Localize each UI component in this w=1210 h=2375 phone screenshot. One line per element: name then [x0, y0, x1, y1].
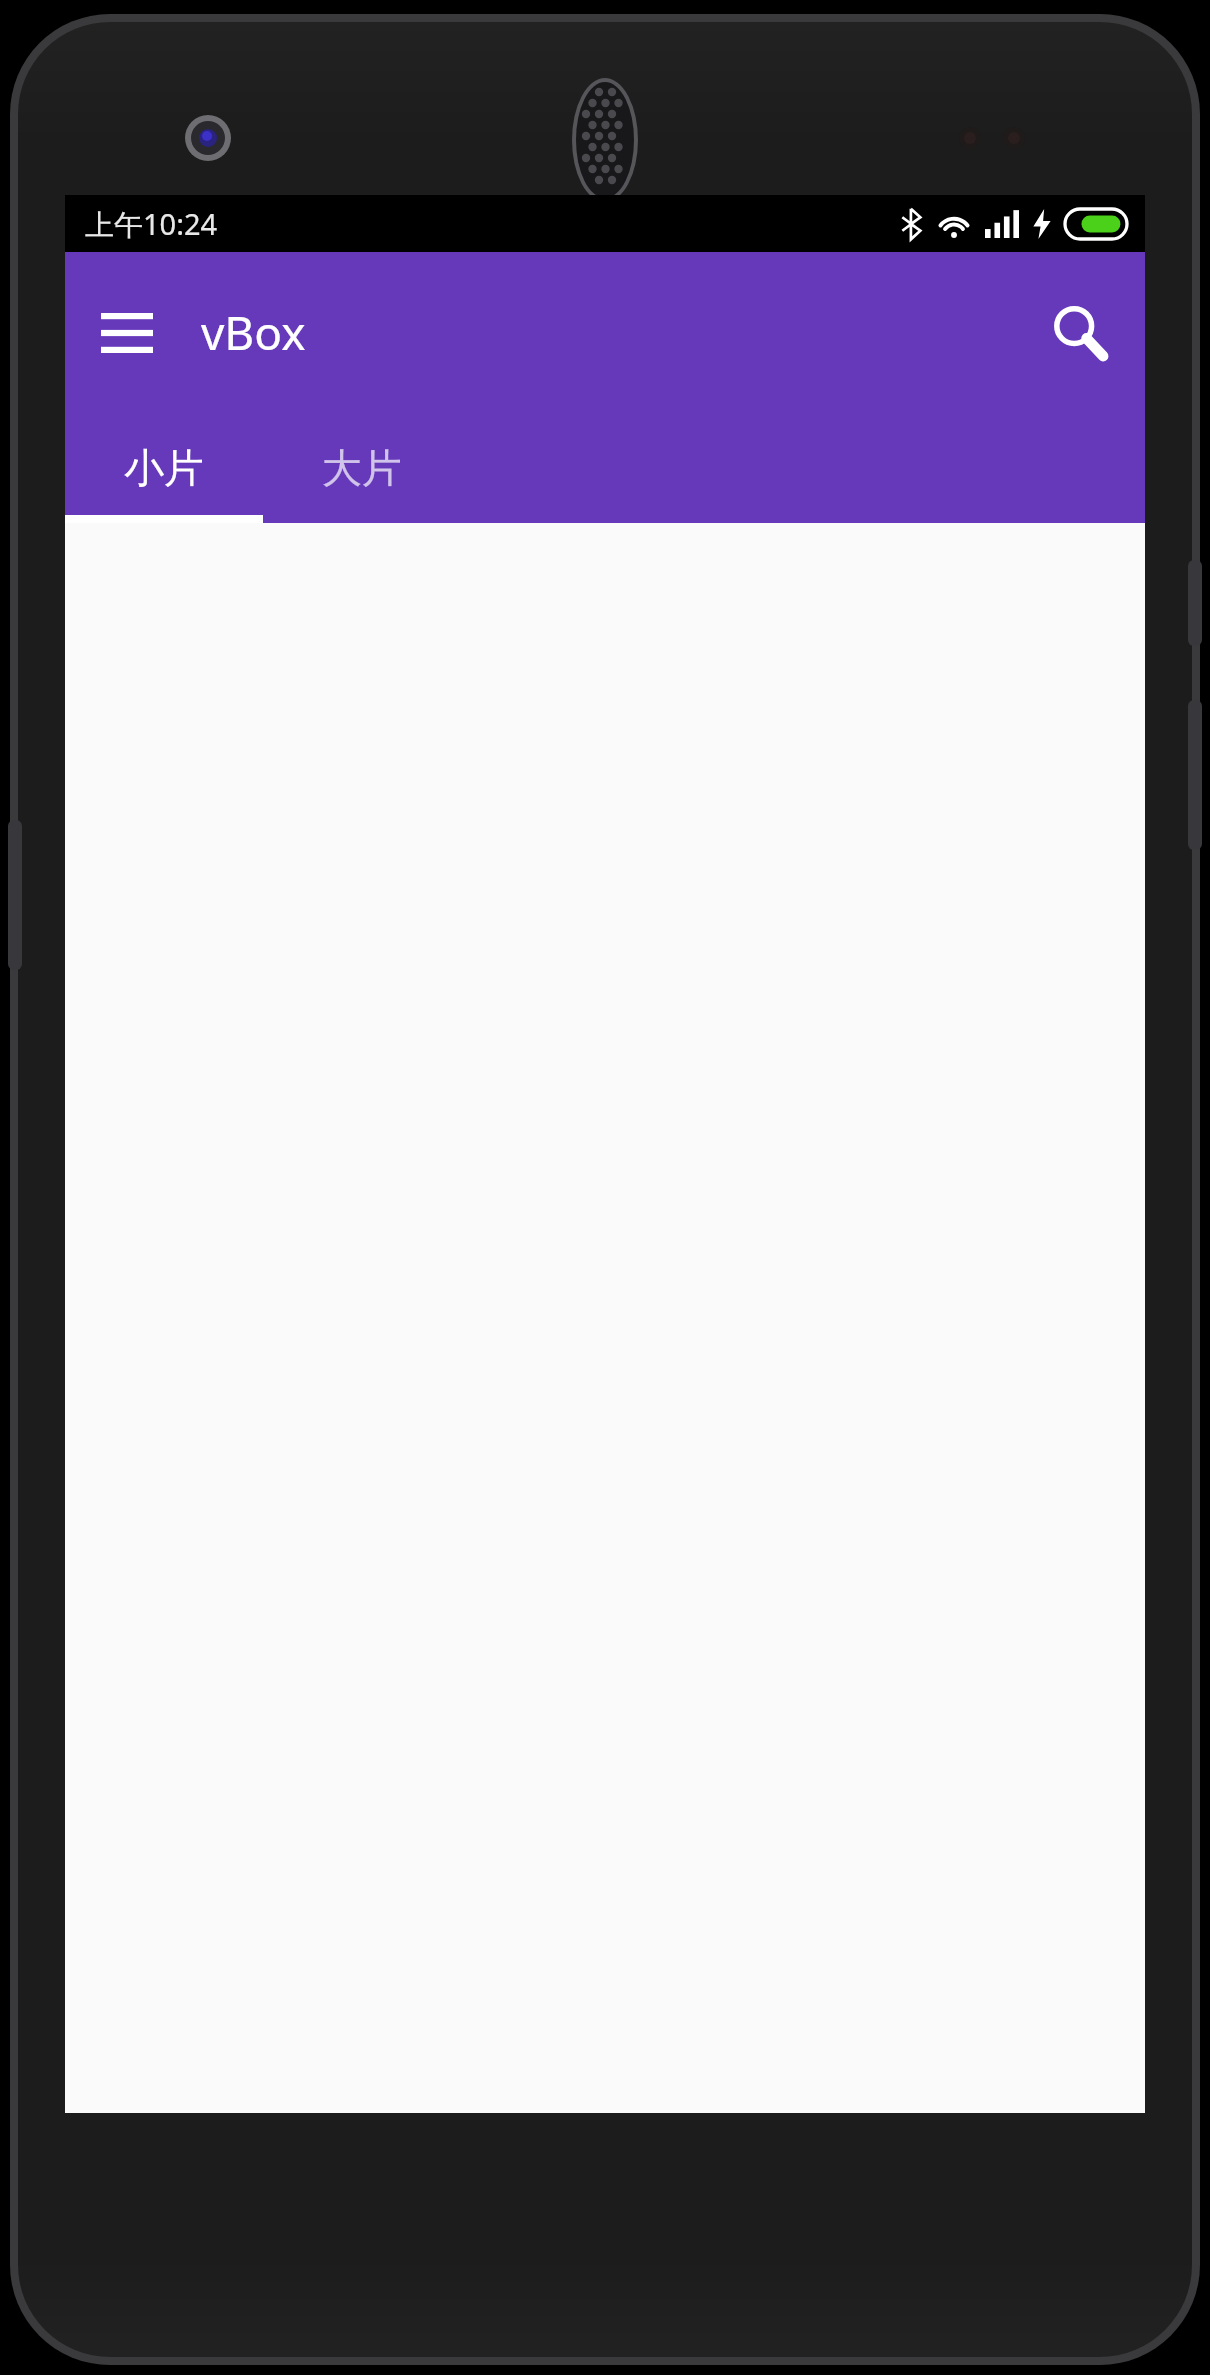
button[interactable]: 大片 — [263, 413, 461, 523]
staticText: 小片 — [124, 443, 204, 493]
button[interactable]: Navigation menu — [85, 291, 169, 375]
staticText: 大片 — [322, 443, 402, 493]
staticText: vBox — [201, 301, 306, 364]
button[interactable]: 小片 — [65, 413, 263, 523]
staticText: 上午10:24 — [85, 204, 218, 244]
button[interactable]: Search — [1035, 288, 1125, 378]
